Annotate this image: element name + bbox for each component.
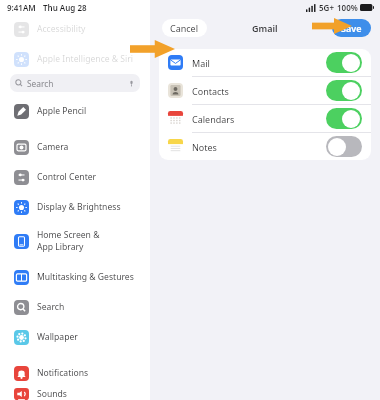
button[interactable]: Apple Intelligence & Siri bbox=[0, 44, 150, 74]
staticText: Contacts bbox=[192, 85, 326, 97]
staticText: Apple Intelligence & Siri bbox=[37, 53, 134, 65]
button[interactable]: Apple Pencil bbox=[0, 96, 150, 126]
button[interactable]: Home Screen & bbox=[0, 222, 150, 260]
staticText: Save bbox=[341, 22, 362, 34]
staticText: Camera bbox=[37, 141, 69, 153]
staticText: Display & Brightness bbox=[37, 201, 121, 213]
staticText: Mail bbox=[192, 57, 326, 69]
button[interactable]: Accessibility bbox=[0, 14, 150, 44]
staticText: Apple Pencil bbox=[37, 105, 87, 117]
staticText: Search bbox=[37, 301, 65, 313]
button[interactable]: Control Center bbox=[0, 162, 150, 192]
button[interactable]: Wallpaper bbox=[0, 322, 150, 352]
button[interactable]: Cancel bbox=[162, 19, 207, 37]
staticText: App Library bbox=[37, 241, 84, 253]
staticText: Cancel bbox=[170, 22, 199, 34]
button[interactable]: Search bbox=[0, 292, 150, 322]
staticText: Search bbox=[27, 78, 128, 89]
button[interactable]: On bbox=[326, 52, 362, 73]
staticText: Notes bbox=[192, 141, 326, 153]
staticText: Home Screen & bbox=[37, 229, 100, 241]
button[interactable]: Calendars bbox=[159, 105, 371, 132]
staticText: Calendars bbox=[192, 113, 326, 125]
button[interactable]: Notifications bbox=[0, 358, 150, 388]
staticText: Thu Aug 28 bbox=[43, 2, 87, 13]
button[interactable]: Multitasking & Gestures bbox=[0, 262, 150, 292]
staticText: 100% bbox=[337, 2, 358, 13]
staticText: Gmail bbox=[252, 22, 278, 34]
button[interactable]: Search bbox=[10, 74, 140, 92]
button[interactable]: Save bbox=[332, 19, 371, 37]
button[interactable]: Off bbox=[326, 136, 362, 157]
staticText: 9:41AM bbox=[7, 2, 36, 13]
staticText: Notifications bbox=[37, 367, 89, 379]
button[interactable]: On bbox=[326, 108, 362, 129]
staticText: 5G+ bbox=[319, 2, 334, 13]
button[interactable]: Camera bbox=[0, 132, 150, 162]
button[interactable]: On bbox=[326, 80, 362, 101]
button[interactable]: Sounds bbox=[0, 388, 150, 400]
staticText: Control Center bbox=[37, 171, 97, 183]
staticText: Accessibility bbox=[37, 23, 86, 35]
button[interactable]: Contacts bbox=[159, 77, 371, 104]
button[interactable]: Display & Brightness bbox=[0, 192, 150, 222]
button[interactable]: Notes bbox=[159, 133, 371, 160]
staticText: Wallpaper bbox=[37, 331, 78, 343]
staticText: Sounds bbox=[37, 388, 67, 400]
button[interactable]: Mail bbox=[159, 49, 371, 76]
staticText: Multitasking & Gestures bbox=[37, 271, 134, 283]
